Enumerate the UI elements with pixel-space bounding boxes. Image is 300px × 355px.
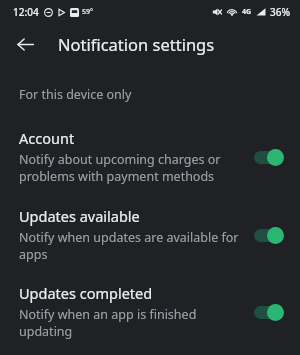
staticText: 4G bbox=[242, 7, 252, 17]
button[interactable]: Toggle bbox=[252, 302, 286, 322]
staticText: For this device only bbox=[19, 86, 132, 103]
staticText: Notify when updates are available for ap… bbox=[19, 229, 240, 263]
staticText: Notification settings bbox=[58, 33, 215, 55]
staticText: 36% bbox=[270, 5, 290, 19]
button[interactable]: Account bbox=[0, 126, 300, 187]
staticText: Updates completed bbox=[19, 283, 153, 303]
staticText: Notify when an app is finished updating bbox=[19, 306, 240, 340]
button[interactable]: Updates completed bbox=[0, 281, 300, 342]
staticText: Account bbox=[19, 128, 75, 148]
staticText: Updates available bbox=[19, 206, 140, 226]
staticText: Notify about upcoming charges or problem… bbox=[19, 151, 240, 185]
staticText: 12:04 bbox=[13, 5, 39, 19]
button[interactable]: Updates available bbox=[0, 204, 300, 265]
button[interactable]: Toggle bbox=[252, 225, 286, 245]
staticText: 59° bbox=[82, 7, 93, 17]
button[interactable]: Back bbox=[9, 28, 41, 60]
button[interactable]: Toggle bbox=[252, 147, 286, 167]
